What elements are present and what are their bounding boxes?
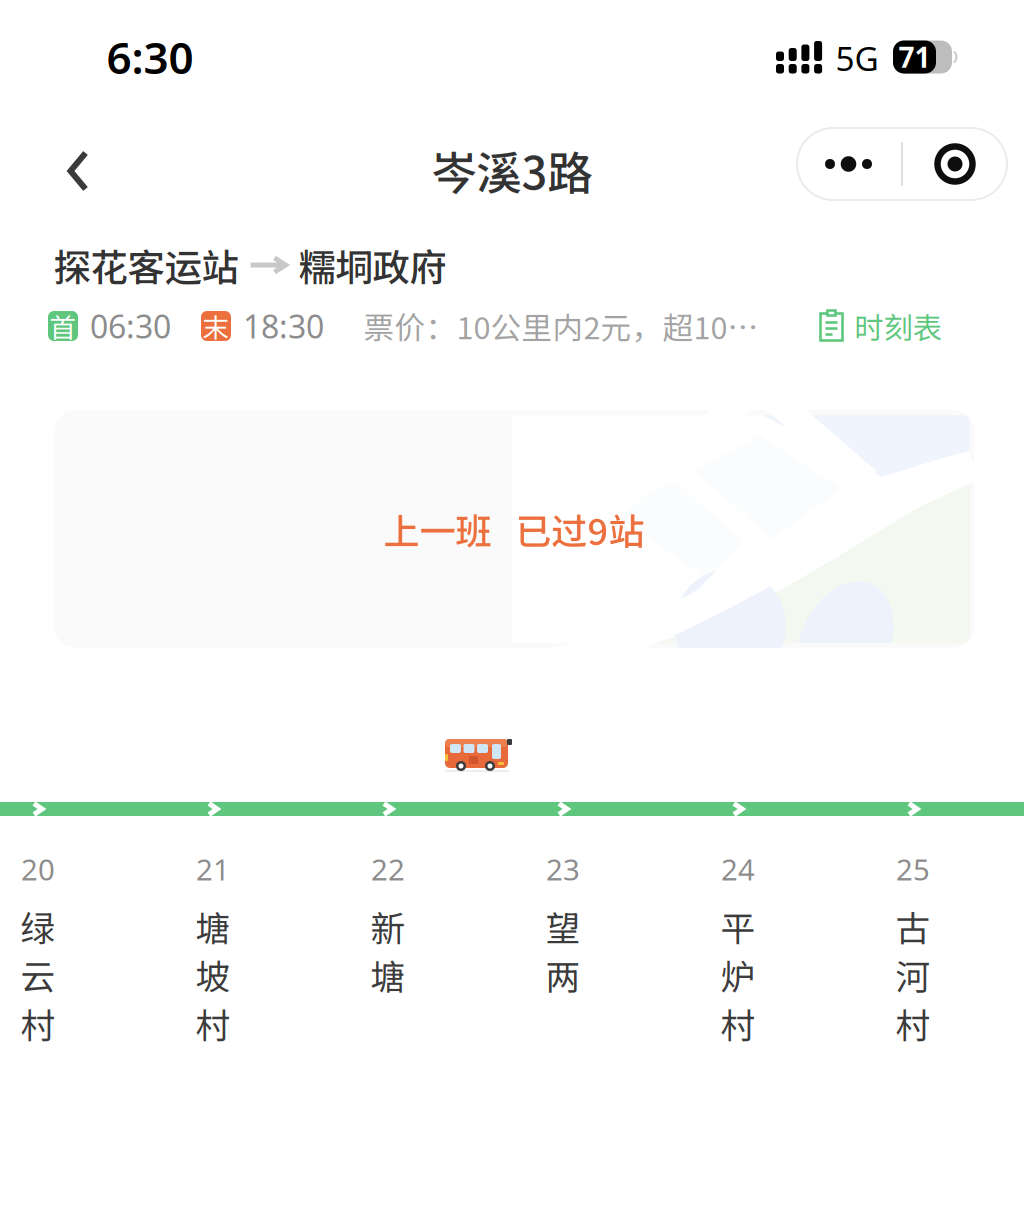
staticText: 云 [20,950,55,1000]
staticText: 6:30 [106,28,193,86]
staticText: 古 [895,901,930,951]
staticText: 村 [195,998,230,1048]
staticText: 平 [720,901,755,951]
staticText: 06:30 [90,305,171,347]
staticText: 绿 [20,901,55,951]
staticText: 两 [545,950,580,1000]
staticText: 坡 [195,950,230,1000]
button[interactable]: Close mini program [903,128,1007,200]
staticText: 时刻表 [854,305,941,347]
staticText: 20 [21,849,55,888]
button[interactable]: 上一班 [54,410,974,648]
staticText: 塘 [195,901,230,951]
staticText: 村 [20,998,55,1048]
staticText: 5G [835,36,878,80]
staticText: 河 [895,950,930,1000]
staticText: 22 [371,849,405,888]
staticText: 探花客运站 [53,238,238,292]
staticText: 望 [545,901,580,951]
staticText: 已过9站 [515,503,644,555]
staticText: 糯垌政府 [298,238,446,292]
button[interactable]: 时刻表 [810,296,950,356]
staticText: 票价：10公里内2元，超10… [363,304,758,348]
staticText: 首 [49,307,76,345]
staticText: 岑溪3路 [431,137,592,203]
staticText: 炉 [720,950,755,1000]
staticText: 18:30 [243,305,324,347]
staticText: 新 [370,901,405,951]
staticText: 71 [898,38,930,76]
staticText: 21 [196,849,230,888]
staticText: 村 [895,998,930,1048]
staticText: 25 [896,849,930,888]
staticText: 23 [546,849,580,888]
staticText: 村 [720,998,755,1048]
button[interactable]: More options [797,128,901,200]
staticText: 上一班 [383,503,491,555]
staticText: 末 [202,307,229,345]
staticText: 24 [721,849,755,888]
staticText: 塘 [370,950,405,1000]
button[interactable]: Back [30,125,126,217]
